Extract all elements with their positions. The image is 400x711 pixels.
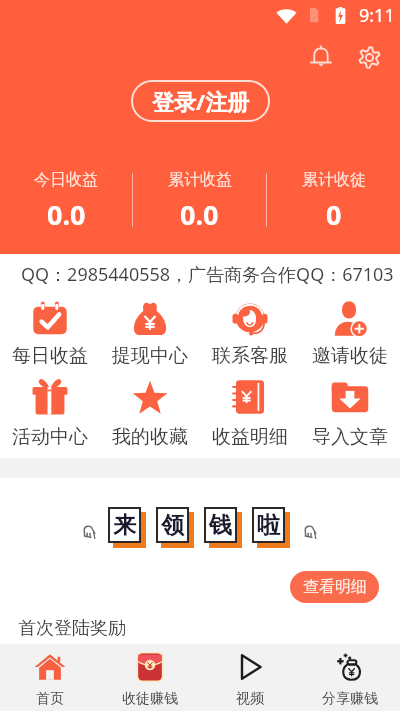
button[interactable]: Notifications [301,37,341,77]
staticText: 9:11 [359,3,395,28]
staticText: 每日收益 [12,344,88,368]
staticText: 累计收益 [168,170,232,190]
staticText: 导入文章 [312,425,388,449]
button[interactable]: 联系客服 [200,294,300,373]
staticText: 我的收藏 [112,425,188,449]
button[interactable]: 提现中心 [100,294,200,373]
button[interactable]: 导入文章 [300,373,400,458]
staticText: 视频 [236,690,264,708]
button[interactable]: 收徒赚钱 [100,644,200,711]
button[interactable]: 分享赚钱 [300,644,400,711]
staticText: 收益明细 [212,425,288,449]
button[interactable]: 查看明细 [290,571,379,603]
staticText: 首页 [36,690,64,708]
button[interactable]: Settings [349,37,389,77]
staticText: 首次登陆奖励 [18,617,126,640]
staticText: 登录/注册 [152,86,250,116]
staticText: QQ：2985440558，广告商务合作QQ：67103 [21,262,400,287]
staticText: 活动中心 [12,425,88,449]
button[interactable]: 首页 [0,644,100,711]
staticText: 来 [113,511,136,540]
button[interactable]: 登录/注册 [131,80,270,122]
button[interactable]: 今日收益 [0,173,132,233]
staticText: 联系客服 [212,344,288,368]
staticText: 0.0 [47,196,86,233]
staticText: 今日收益 [34,170,98,190]
button[interactable]: 收益明细 [200,373,300,458]
button[interactable]: 邀请收徒 [300,294,400,373]
staticText: 0.0 [180,196,219,233]
staticText: 领 [161,511,184,540]
button[interactable]: 视频 [200,644,300,711]
button[interactable]: 累计收益 [133,173,266,233]
button[interactable]: 活动中心 [0,373,100,458]
staticText: 提现中心 [112,344,188,368]
staticText: 收徒赚钱 [122,690,178,708]
staticText: 分享赚钱 [322,690,378,708]
staticText: 0 [326,196,342,233]
button[interactable]: 每日收益 [0,294,100,373]
button[interactable]: 累计收徒 [267,173,400,233]
button[interactable]: 我的收藏 [100,373,200,458]
staticText: 邀请收徒 [312,344,388,368]
staticText: 钱 [209,511,232,540]
staticText: 啦 [257,511,280,540]
staticText: 查看明细 [303,577,367,597]
staticText: 累计收徒 [302,170,366,190]
